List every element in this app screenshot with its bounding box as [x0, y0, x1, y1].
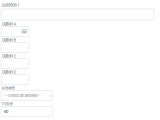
- button[interactable]: [1, 27, 29, 37]
- button[interactable]: Insert image for Option A: [22, 29, 26, 33]
- button[interactable]: [1, 43, 29, 53]
- button[interactable]: [1, 106, 52, 116]
- staticText: Option B: [1, 37, 16, 42]
- staticText: Option C: [1, 53, 16, 58]
- button[interactable]: [1, 59, 29, 69]
- staticText: 60: [4, 109, 9, 114]
- button[interactable]: [1, 91, 52, 101]
- staticText: Option A: [1, 21, 16, 26]
- button[interactable]: [1, 9, 154, 20]
- staticText: Timer: [1, 101, 13, 106]
- staticText: Answer: [1, 85, 15, 90]
- button[interactable]: [1, 75, 29, 85]
- staticText: Option D: [1, 69, 16, 74]
- staticText: Question 1: [1, 2, 19, 7]
- staticText: --Select an answer--: [4, 93, 41, 98]
